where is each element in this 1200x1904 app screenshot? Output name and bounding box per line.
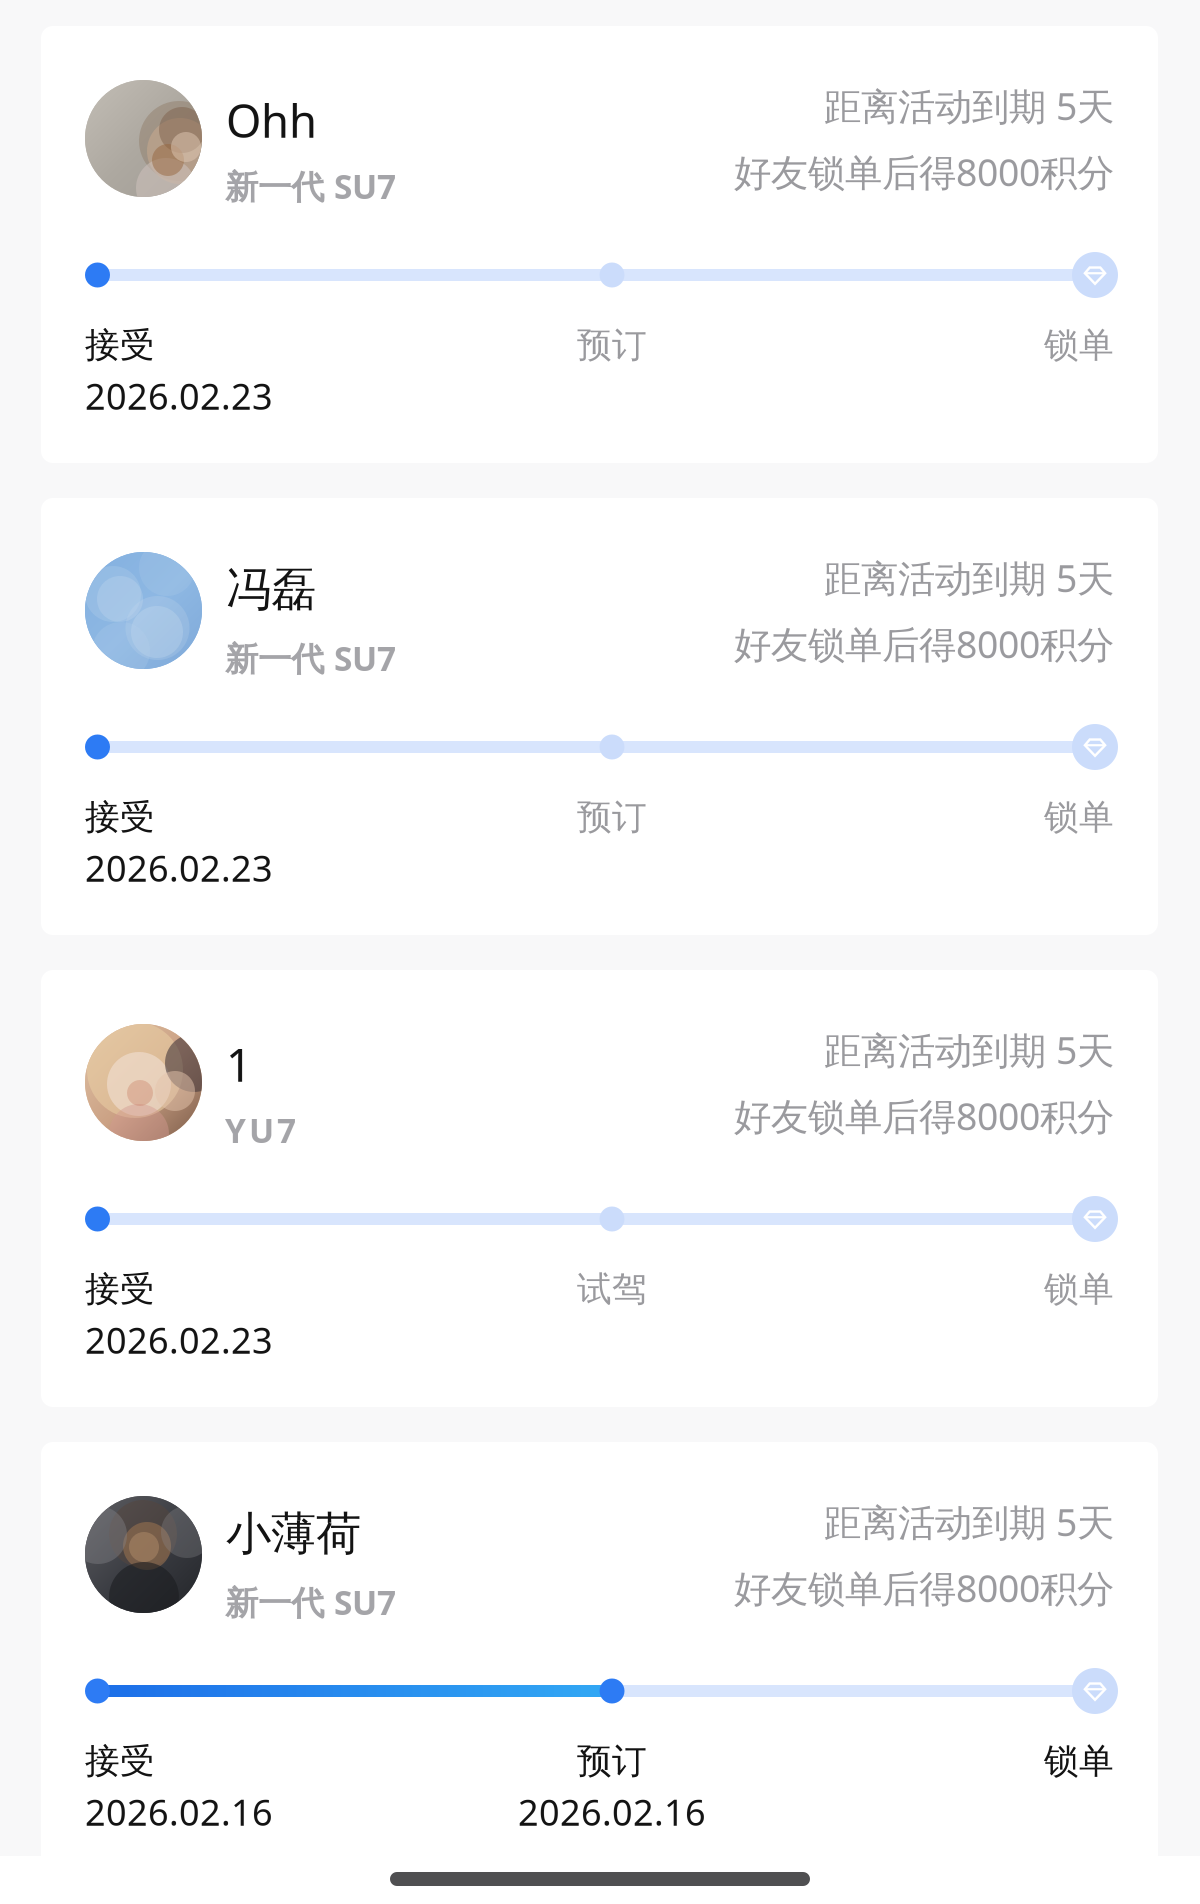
button[interactable]: Ohh	[41, 26, 1158, 463]
staticText: 预订	[577, 324, 647, 367]
button[interactable]: 冯磊	[41, 498, 1158, 935]
staticText: 好友锁单后得8000积分	[734, 147, 1114, 197]
staticText: 接受	[85, 1740, 155, 1783]
staticText: 2026.02.23	[85, 372, 273, 420]
staticText: 预订	[577, 796, 647, 839]
staticText: 距离活动到期 5天	[824, 81, 1114, 131]
staticText: 接受	[85, 796, 155, 839]
staticText: 试驾	[577, 1268, 647, 1311]
staticText: 好友锁单后得8000积分	[734, 619, 1114, 669]
staticText: 新一代 SU7	[225, 164, 396, 208]
staticText: 2026.02.16	[85, 1788, 273, 1836]
staticText: 锁单	[1044, 796, 1114, 839]
staticText: 2026.02.23	[85, 1316, 273, 1364]
staticText: 小薄荷	[226, 1506, 361, 1562]
staticText: 锁单	[1044, 324, 1114, 367]
staticText: Ohh	[226, 90, 317, 150]
staticText: 1	[226, 1034, 252, 1094]
staticText: 距离活动到期 5天	[824, 553, 1114, 603]
staticText: 2026.02.23	[85, 844, 273, 892]
staticText: 距离活动到期 5天	[824, 1497, 1114, 1547]
staticText: 锁单	[1044, 1268, 1114, 1311]
staticText: 接受	[85, 324, 155, 367]
staticText: 新一代 SU7	[225, 1580, 396, 1624]
button[interactable]: 1	[41, 970, 1158, 1407]
staticText: 锁单	[1044, 1740, 1114, 1783]
staticText: 预订	[577, 1740, 647, 1783]
button[interactable]: 小薄荷	[41, 1442, 1158, 1879]
staticText: 好友锁单后得8000积分	[734, 1563, 1114, 1613]
staticText: 好友锁单后得8000积分	[734, 1091, 1114, 1141]
staticText: 距离活动到期 5天	[824, 1025, 1114, 1075]
staticText: 接受	[85, 1268, 155, 1311]
staticText: YU7	[225, 1108, 296, 1152]
staticText: 2026.02.16	[518, 1788, 706, 1836]
staticText: 冯磊	[226, 562, 316, 618]
staticText: 新一代 SU7	[225, 636, 396, 680]
